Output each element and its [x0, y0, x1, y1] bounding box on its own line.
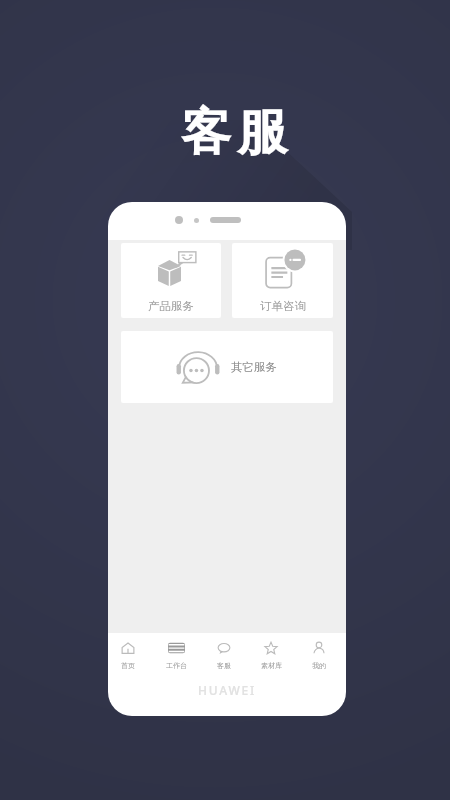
button[interactable]: 订单咨询 — [232, 243, 333, 318]
staticText: 其它服务 — [231, 360, 277, 374]
staticText: 我的 — [312, 661, 326, 670]
staticText: 首页 — [121, 661, 135, 670]
staticText: 产品服务 — [148, 299, 194, 313]
button[interactable]: 我的 — [303, 641, 335, 670]
staticText: HUAWEI — [198, 682, 257, 698]
staticText: 素材库 — [261, 661, 282, 670]
staticText: 客服 — [217, 661, 231, 670]
staticText: 工作台 — [166, 661, 187, 670]
button[interactable]: 产品服务 — [121, 243, 221, 318]
staticText: 订单咨询 — [260, 299, 306, 313]
button[interactable]: 其它服务 — [121, 331, 333, 403]
button[interactable]: 首页 — [112, 641, 144, 670]
button[interactable]: 素材库 — [255, 641, 287, 670]
button[interactable]: 客服 — [208, 641, 240, 670]
staticText: 客服 — [178, 101, 290, 164]
button[interactable]: 工作台 — [160, 641, 192, 670]
